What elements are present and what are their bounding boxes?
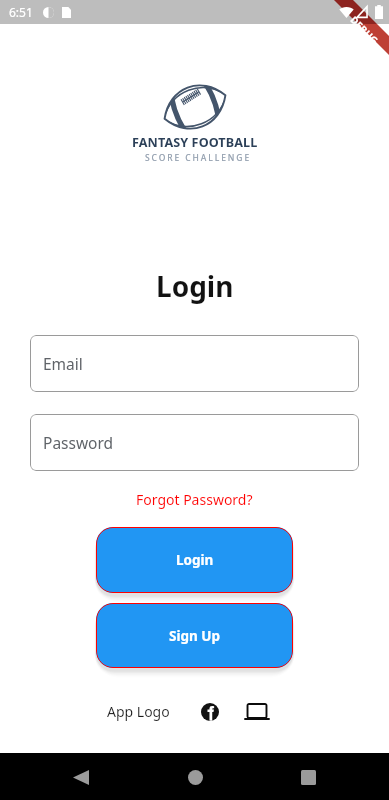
staticText: SCORE CHALLENGE — [145, 152, 252, 164]
staticText: DEBUG — [347, 13, 381, 47]
button[interactable]: Password — [30, 414, 359, 471]
button[interactable]: Facebook — [201, 703, 219, 721]
button[interactable]: Login — [96, 527, 293, 593]
staticText: Login — [176, 551, 214, 569]
button[interactable]: Email — [30, 335, 359, 392]
button[interactable]: Home — [178, 760, 212, 794]
button[interactable]: Back — [64, 760, 98, 794]
staticText: Email — [43, 353, 83, 374]
staticText: Forgot Password? — [136, 490, 253, 509]
staticText: Password — [43, 432, 114, 453]
button[interactable]: Computer — [245, 704, 269, 720]
staticText: Login — [156, 267, 234, 305]
button[interactable]: Forgot Password? — [132, 488, 257, 511]
staticText: Sign Up — [169, 627, 221, 645]
staticText: FANTASY FOOTBALL — [132, 134, 258, 151]
staticText: App Logo — [107, 702, 170, 721]
staticText: 6:51 — [9, 4, 33, 20]
button[interactable]: Sign Up — [96, 603, 293, 668]
button[interactable]: Recent apps — [291, 760, 325, 794]
